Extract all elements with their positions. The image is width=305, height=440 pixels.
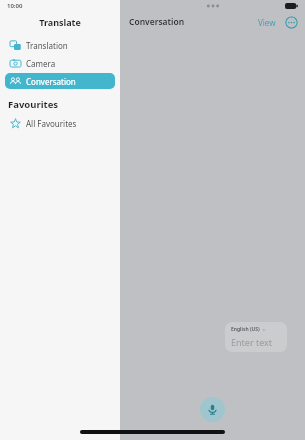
button[interactable]: English (US) (225, 322, 287, 352)
button[interactable]: Conversation (5, 73, 115, 89)
staticText: View (258, 17, 276, 28)
staticText: Camera (26, 58, 56, 69)
staticText: Favourites (8, 98, 59, 111)
staticText: Translate (39, 16, 81, 28)
staticText: Enter text (231, 336, 273, 348)
staticText: Conversation (129, 16, 185, 28)
button[interactable]: Translation (5, 37, 115, 53)
staticText: Conversation (26, 76, 76, 87)
button[interactable]: Camera (5, 55, 115, 71)
staticText: English (US) (231, 326, 260, 333)
staticText: 10:00 (7, 2, 23, 10)
button[interactable]: All Favourites (5, 115, 115, 131)
staticText: Translation (26, 40, 68, 51)
staticText: All Favourites (26, 118, 77, 129)
button[interactable]: Start listening (200, 397, 225, 422)
button[interactable]: View (256, 15, 278, 30)
button[interactable]: More options (285, 16, 298, 29)
